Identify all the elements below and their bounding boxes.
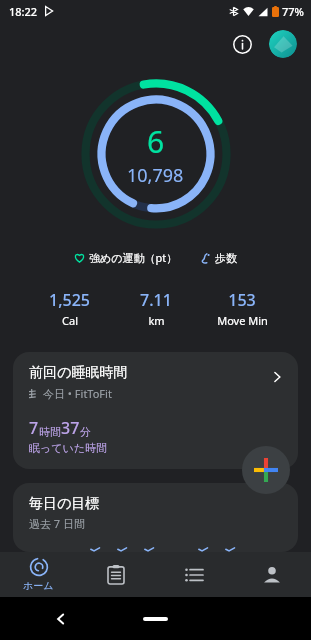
staticText: 強めの運動（pt） <box>89 250 178 265</box>
staticText: 7 <box>29 417 39 439</box>
staticText: 分 <box>80 425 91 439</box>
staticText: 153 <box>228 289 256 311</box>
button[interactable]: 歩数 <box>198 249 239 267</box>
button[interactable]: 毎日の目標 <box>13 483 298 552</box>
staticText: Cal <box>62 313 78 328</box>
staticText: Move Min <box>217 313 268 328</box>
button[interactable]: Profile <box>233 552 311 597</box>
button[interactable]: Account <box>269 30 297 58</box>
button[interactable]: 7.11 <box>113 287 199 330</box>
button[interactable]: 強めの運動（pt） <box>72 248 180 267</box>
button[interactable]: Journal <box>77 552 155 597</box>
button[interactable]: 前回の睡眠時間 <box>13 352 298 469</box>
staticText: 前回の睡眠時間 <box>29 364 128 382</box>
staticText: km <box>148 313 165 328</box>
button[interactable]: Info <box>227 29 257 59</box>
other: Back <box>55 613 67 625</box>
staticText: ホーム <box>23 579 54 592</box>
button[interactable]: 153 <box>199 287 285 330</box>
staticText: 1,525 <box>49 289 90 311</box>
button[interactable]: Browse <box>155 552 233 597</box>
staticText: 6 <box>147 121 165 162</box>
button[interactable]: Add activity <box>242 446 290 494</box>
staticText: 77% <box>282 4 304 19</box>
staticText: 過去 7 日間 <box>29 516 86 531</box>
staticText: 7.11 <box>140 289 172 311</box>
staticText: 37 <box>61 417 80 439</box>
staticText: 10,798 <box>127 163 184 188</box>
button[interactable]: ホーム <box>0 552 77 597</box>
staticText: 時間 <box>39 425 61 439</box>
staticText: 18:22 <box>9 4 38 19</box>
staticText: 今日 • FitToFit <box>43 386 112 401</box>
staticText: 眠っていた時間 <box>29 441 108 455</box>
staticText: 歩数 <box>215 251 237 265</box>
button[interactable]: 1,525 <box>26 287 113 330</box>
staticText: 毎日の目標 <box>29 495 100 513</box>
